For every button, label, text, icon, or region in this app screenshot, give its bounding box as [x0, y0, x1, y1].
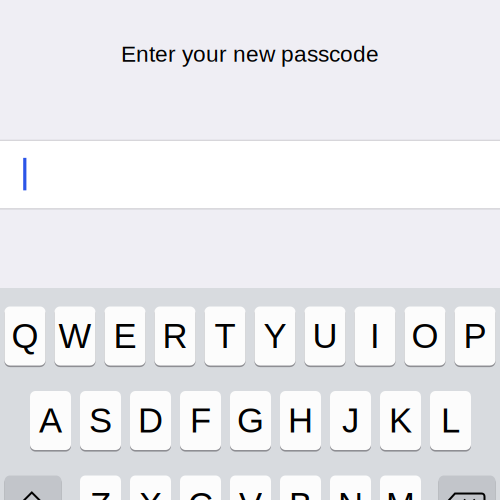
- button[interactable]: Shift: [4, 475, 61, 500]
- staticText: F: [190, 401, 211, 440]
- button[interactable]: M: [380, 475, 421, 500]
- button[interactable]: F: [180, 390, 221, 450]
- staticText: H: [288, 401, 313, 440]
- staticText: Enter your new passcode: [121, 41, 379, 67]
- button[interactable]: I: [354, 306, 395, 366]
- button[interactable]: A: [30, 390, 71, 450]
- staticText: Y: [263, 317, 286, 355]
- button[interactable]: H: [280, 390, 321, 450]
- button[interactable]: C: [180, 475, 221, 500]
- button[interactable]: X: [130, 475, 171, 500]
- button[interactable]: R: [154, 306, 195, 366]
- staticText: N: [338, 486, 363, 500]
- staticText: K: [389, 401, 412, 440]
- button[interactable]: S: [80, 390, 121, 450]
- staticText: I: [370, 317, 380, 355]
- button[interactable]: U: [304, 306, 345, 366]
- staticText: C: [188, 486, 213, 500]
- button[interactable]: O: [404, 306, 445, 366]
- button[interactable]: P: [454, 306, 495, 366]
- button[interactable]: B: [280, 475, 321, 500]
- staticText: R: [162, 317, 187, 355]
- staticText: L: [441, 401, 460, 440]
- button[interactable]: T: [204, 306, 245, 366]
- staticText: G: [237, 401, 264, 440]
- staticText: V: [239, 486, 262, 500]
- staticText: A: [39, 401, 62, 440]
- button[interactable]: Y: [254, 306, 295, 366]
- staticText: E: [113, 317, 136, 355]
- staticText: S: [89, 401, 112, 440]
- staticText: Q: [11, 317, 38, 355]
- staticText: B: [289, 486, 312, 500]
- button[interactable]: W: [54, 306, 95, 366]
- button[interactable]: G: [230, 390, 271, 450]
- staticText: Z: [90, 486, 111, 500]
- staticText: W: [58, 317, 91, 355]
- button[interactable]: V: [230, 475, 271, 500]
- button[interactable]: J: [330, 390, 371, 450]
- staticText: J: [342, 401, 359, 440]
- staticText: M: [386, 486, 415, 500]
- button[interactable]: Z: [80, 475, 121, 500]
- staticText: X: [139, 486, 162, 500]
- button[interactable]: D: [130, 390, 171, 450]
- button[interactable]: Q: [4, 306, 45, 366]
- button[interactable]: Delete: [438, 475, 495, 500]
- staticText: D: [138, 401, 163, 440]
- button[interactable]: L: [430, 390, 471, 450]
- button[interactable]: E: [104, 306, 145, 366]
- staticText: P: [463, 317, 486, 355]
- staticText: O: [411, 317, 438, 355]
- button[interactable]: N: [330, 475, 371, 500]
- staticText: U: [312, 317, 337, 355]
- button[interactable]: K: [380, 390, 421, 450]
- staticText: T: [214, 317, 235, 355]
